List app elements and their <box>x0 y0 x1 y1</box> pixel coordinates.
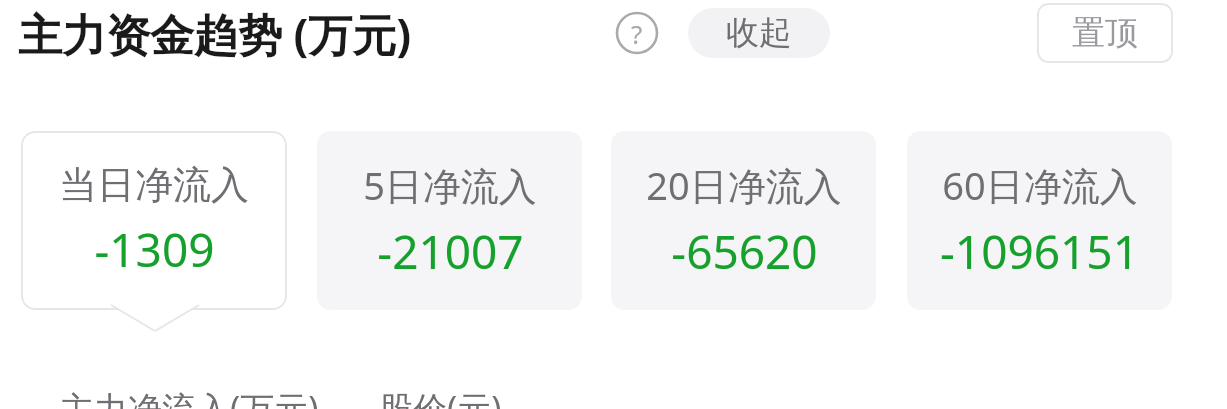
staticText: 5日净流入 <box>363 159 537 211</box>
staticText: 股价(元) <box>379 385 502 409</box>
staticText: -21007 <box>377 220 524 283</box>
button[interactable]: 置顶 <box>1037 3 1173 63</box>
button[interactable]: 60日净流入 <box>907 131 1172 310</box>
button[interactable]: Help <box>615 11 659 55</box>
staticText: -65620 <box>671 220 818 283</box>
staticText: 60日净流入 <box>942 159 1138 211</box>
staticText: -1309 <box>94 218 215 281</box>
staticText: ? <box>631 16 643 51</box>
button[interactable]: 当日净流入 <box>21 131 287 310</box>
staticText: 主力净流入(万元) <box>60 385 319 409</box>
staticText: 当日净流入 <box>59 161 249 209</box>
staticText: 20日净流入 <box>646 159 842 211</box>
staticText: 主力资金趋势 (万元) <box>18 4 412 64</box>
staticText: 收起 <box>726 12 792 54</box>
staticText: 置顶 <box>1072 12 1138 54</box>
button[interactable]: 20日净流入 <box>611 131 876 310</box>
button[interactable]: 5日净流入 <box>317 131 582 310</box>
button[interactable]: 收起 <box>688 8 830 58</box>
staticText: -1096151 <box>940 220 1139 283</box>
